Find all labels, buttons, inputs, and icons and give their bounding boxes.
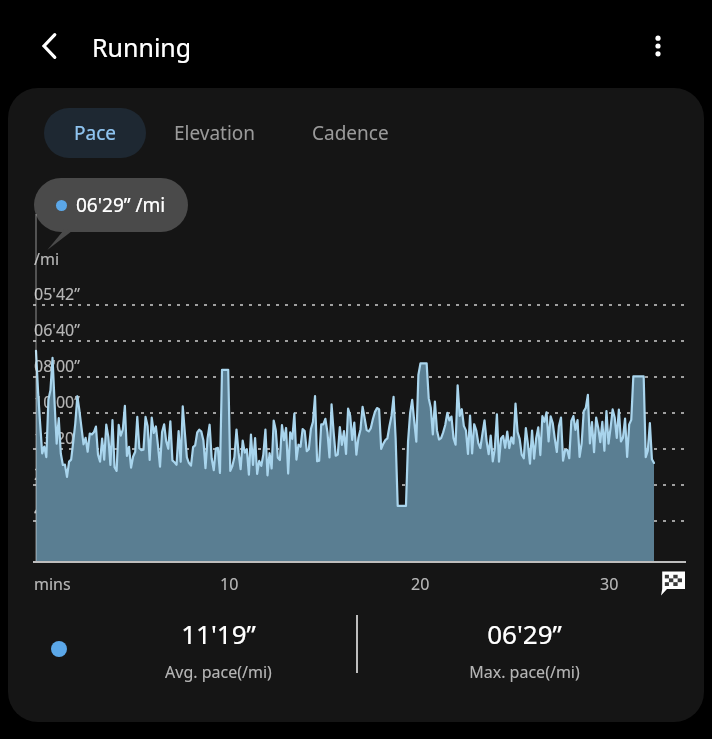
staticText: 10 — [220, 573, 239, 595]
staticText: Pace — [74, 120, 116, 146]
staticText: 13'20” — [34, 427, 80, 449]
staticText: mins — [34, 573, 71, 595]
button[interactable]: Cadence — [284, 108, 417, 158]
button[interactable]: Back — [28, 24, 72, 68]
staticText: 30 — [600, 573, 619, 595]
staticText: 06'29” — [487, 616, 562, 651]
staticText: /mi — [34, 248, 60, 270]
button[interactable]: More options — [636, 24, 680, 68]
staticText: 40'00” — [34, 499, 80, 521]
staticText: Cadence — [312, 120, 389, 146]
staticText: Max. pace(/mi) — [469, 661, 580, 683]
button[interactable]: 11'19” — [128, 616, 308, 683]
staticText: 06'29” /mi — [76, 192, 166, 218]
button[interactable]: 06'29” — [434, 616, 614, 683]
staticText: 20'00” — [34, 463, 80, 485]
staticText: 08'00” — [34, 355, 80, 377]
staticText: Elevation — [174, 120, 256, 146]
button[interactable]: Finish — [656, 566, 690, 600]
staticText: 06'40” — [34, 319, 80, 341]
staticText: Running — [92, 30, 192, 64]
staticText: Avg. pace(/mi) — [165, 661, 272, 683]
staticText: 11'19” — [181, 616, 256, 651]
staticText: 20 — [411, 573, 430, 595]
button[interactable]: Elevation — [146, 108, 284, 158]
staticText: 05'42” — [34, 283, 80, 305]
staticText: 10'00” — [34, 391, 80, 413]
button[interactable]: Pace — [44, 108, 146, 158]
